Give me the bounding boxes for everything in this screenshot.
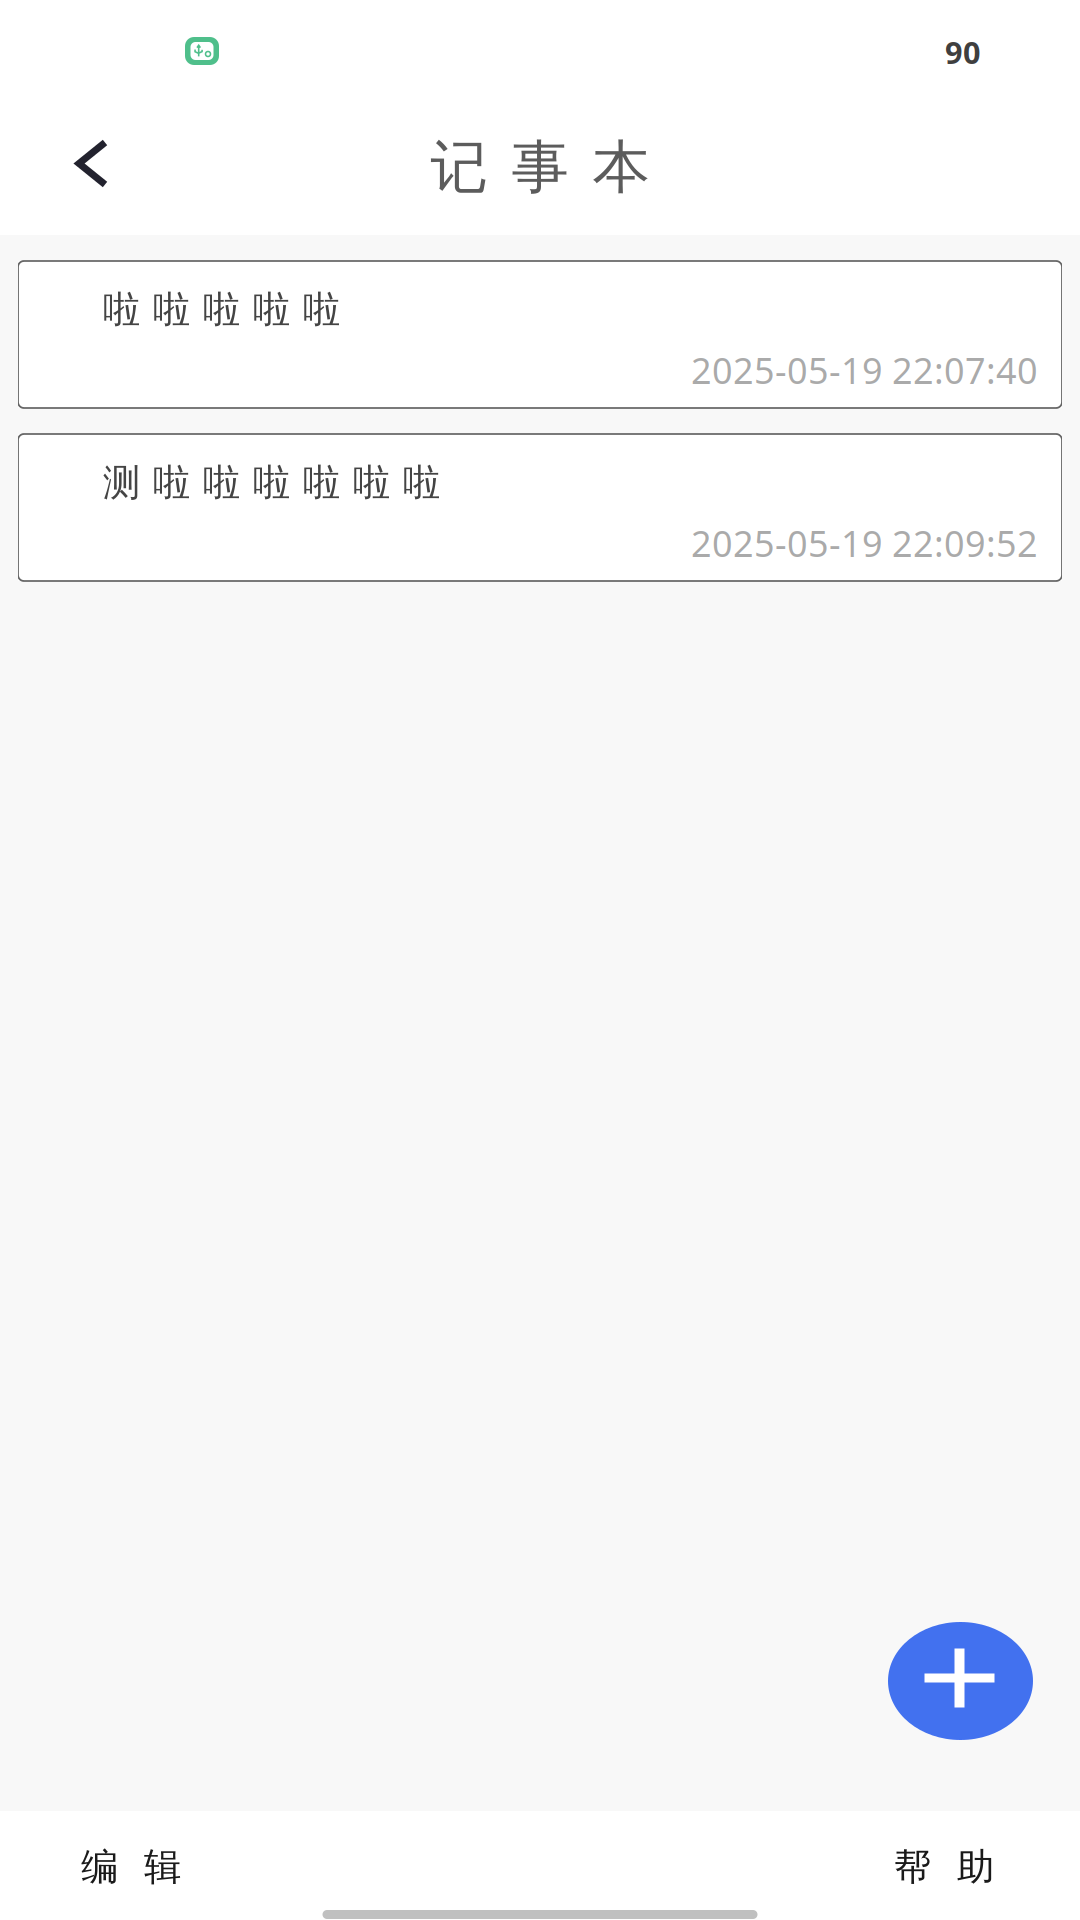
button[interactable]: 编辑 <box>71 1833 231 1901</box>
staticText: 编辑 <box>81 1844 181 1890</box>
staticText: 测啦啦啦啦啦啦 <box>103 460 440 506</box>
staticText: 2025-05-19 22:07:40 <box>691 346 1038 394</box>
staticText: 啦啦啦啦啦 <box>103 287 340 333</box>
staticText: 2025-05-19 22:09:52 <box>691 519 1038 567</box>
staticText: 记事本 <box>430 132 649 203</box>
staticText: 90 <box>945 32 981 72</box>
button[interactable]: 帮助 <box>884 1833 1044 1901</box>
button[interactable]: Back <box>49 116 135 218</box>
button[interactable]: 啦啦啦啦啦 <box>18 261 1062 408</box>
button[interactable]: Add note <box>888 1622 1033 1740</box>
button[interactable]: 测啦啦啦啦啦啦 <box>18 434 1062 581</box>
staticText: 帮助 <box>894 1844 994 1890</box>
